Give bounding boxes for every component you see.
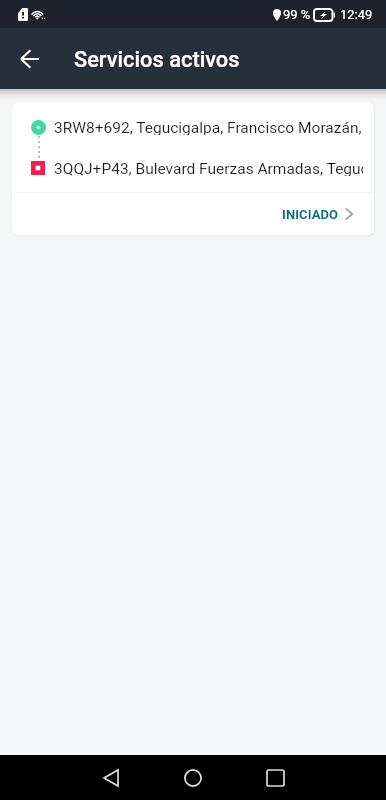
button[interactable]: 3RW8+692, Tegucigalpa, Francisco Morazán… — [12, 103, 374, 235]
button[interactable]: INICIADO — [12, 193, 374, 235]
staticText: INICIADO — [282, 207, 339, 222]
staticText: 3QQJ+P43, Bulevard Fuerzas Armadas, Tegu… — [54, 160, 363, 176]
button[interactable]: Home — [163, 755, 223, 800]
staticText: 99 % — [283, 7, 311, 22]
button[interactable]: Recents — [245, 755, 305, 800]
button[interactable]: Back — [8, 37, 52, 81]
staticText: 3RW8+692, Tegucigalpa, Francisco Morazán… — [54, 119, 363, 135]
staticText: Servicios activos — [74, 47, 240, 73]
staticText: 12:49 — [340, 7, 373, 22]
button[interactable]: Back — [81, 755, 141, 800]
